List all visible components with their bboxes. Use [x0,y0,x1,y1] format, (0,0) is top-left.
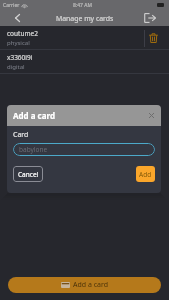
staticText: Card [13,130,29,140]
staticText: Add [139,170,152,179]
staticText: 8:47 AM [73,2,92,9]
staticText: Cancel [18,170,39,179]
staticText: Carrier [3,2,20,9]
button[interactable]: Add [136,166,155,182]
staticText: babylone [19,145,48,154]
button[interactable]: Log out [131,10,169,26]
button[interactable]: Back [0,10,35,26]
staticText: digital [7,63,25,71]
staticText: Add a card [73,280,108,290]
button[interactable]: Add a card [8,277,161,293]
button[interactable]: Delete card [145,26,161,50]
staticText: coutume2 [7,29,38,38]
staticText: Manage my cards [56,14,114,23]
button[interactable]: babylone [13,143,155,156]
button[interactable]: Close [141,105,161,126]
staticText: physical [7,39,30,47]
button[interactable]: coutume2 [0,26,169,50]
staticText: x3360i9i [7,53,33,62]
button[interactable]: x3360i9i [0,50,169,74]
staticText: Add a card [13,110,55,121]
button[interactable]: Cancel [13,166,43,182]
